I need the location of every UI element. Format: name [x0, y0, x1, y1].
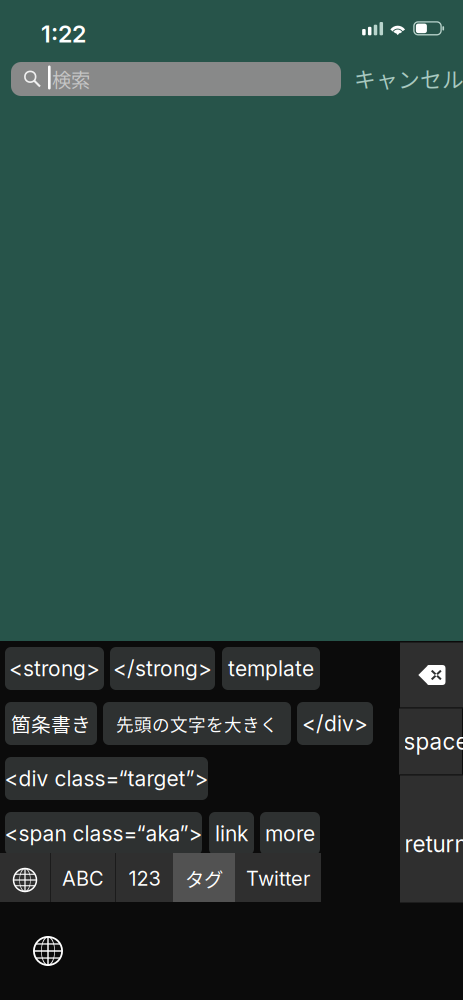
staticText: <span class=“aka”> — [4, 821, 202, 846]
button[interactable]: Twitter — [235, 853, 321, 902]
button[interactable]: return — [400, 775, 463, 902]
staticText: 1:22 — [41, 20, 86, 48]
button[interactable]: Delete — [400, 642, 463, 707]
button[interactable]: more — [260, 812, 320, 855]
button[interactable]: 123 — [116, 853, 173, 902]
button[interactable]: </div> — [297, 702, 373, 745]
button[interactable]: <div class=“target”> — [5, 757, 208, 800]
button[interactable]: space — [400, 708, 463, 774]
button[interactable]: <strong> — [5, 647, 104, 690]
button[interactable]: キャンセル — [354, 61, 460, 95]
staticText: <strong> — [9, 656, 100, 681]
staticText: <div class=“target”> — [4, 766, 208, 791]
staticText: ABC — [62, 866, 104, 891]
staticText: 123 — [128, 866, 160, 891]
button[interactable]: template — [222, 647, 320, 690]
button[interactable]: 先頭の文字を大きく — [103, 702, 291, 745]
button[interactable]: </strong> — [110, 647, 215, 690]
staticText: キャンセル — [354, 62, 463, 94]
staticText: 箇条書き — [11, 709, 91, 738]
staticText: </div> — [302, 711, 368, 736]
button[interactable]: 箇条書き — [5, 702, 97, 745]
button[interactable]: ABC — [51, 853, 115, 902]
button[interactable]: link — [209, 812, 254, 855]
button[interactable]: <span class=“aka”> — [5, 812, 202, 855]
button[interactable]: Next keyboard — [0, 853, 50, 902]
staticText: タグ — [185, 864, 223, 892]
staticText: space — [403, 728, 463, 755]
staticText: return — [404, 830, 463, 858]
button[interactable]: タグ — [173, 853, 235, 902]
staticText: </strong> — [113, 656, 212, 681]
button[interactable]: Globe — [26, 929, 70, 973]
staticText: Twitter — [246, 866, 310, 891]
staticText: more — [265, 821, 315, 846]
staticText: link — [215, 821, 248, 846]
staticText: 先頭の文字を大きく — [116, 711, 278, 736]
staticText: 検索 — [52, 65, 90, 93]
staticText: template — [228, 656, 314, 681]
